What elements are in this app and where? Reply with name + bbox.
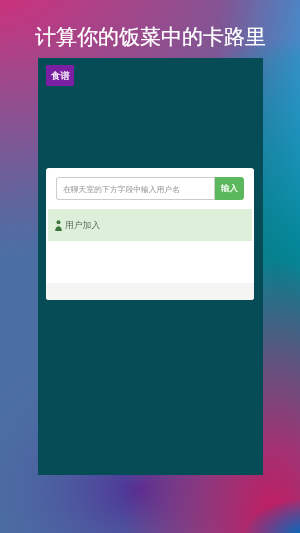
staticText: 在聊天室的下方字段中输入用户名: [63, 184, 180, 194]
staticText: 用户加入: [65, 220, 101, 231]
button[interactable]: 用户加入: [48, 209, 252, 241]
button[interactable]: 食谱: [46, 65, 74, 86]
staticText: 食谱: [51, 70, 70, 82]
button[interactable]: 输入: [215, 177, 244, 200]
staticText: 输入: [221, 183, 238, 194]
staticText: 计算你的饭菜中的卡路里: [35, 24, 266, 50]
button[interactable]: 在聊天室的下方字段中输入用户名: [56, 177, 215, 200]
